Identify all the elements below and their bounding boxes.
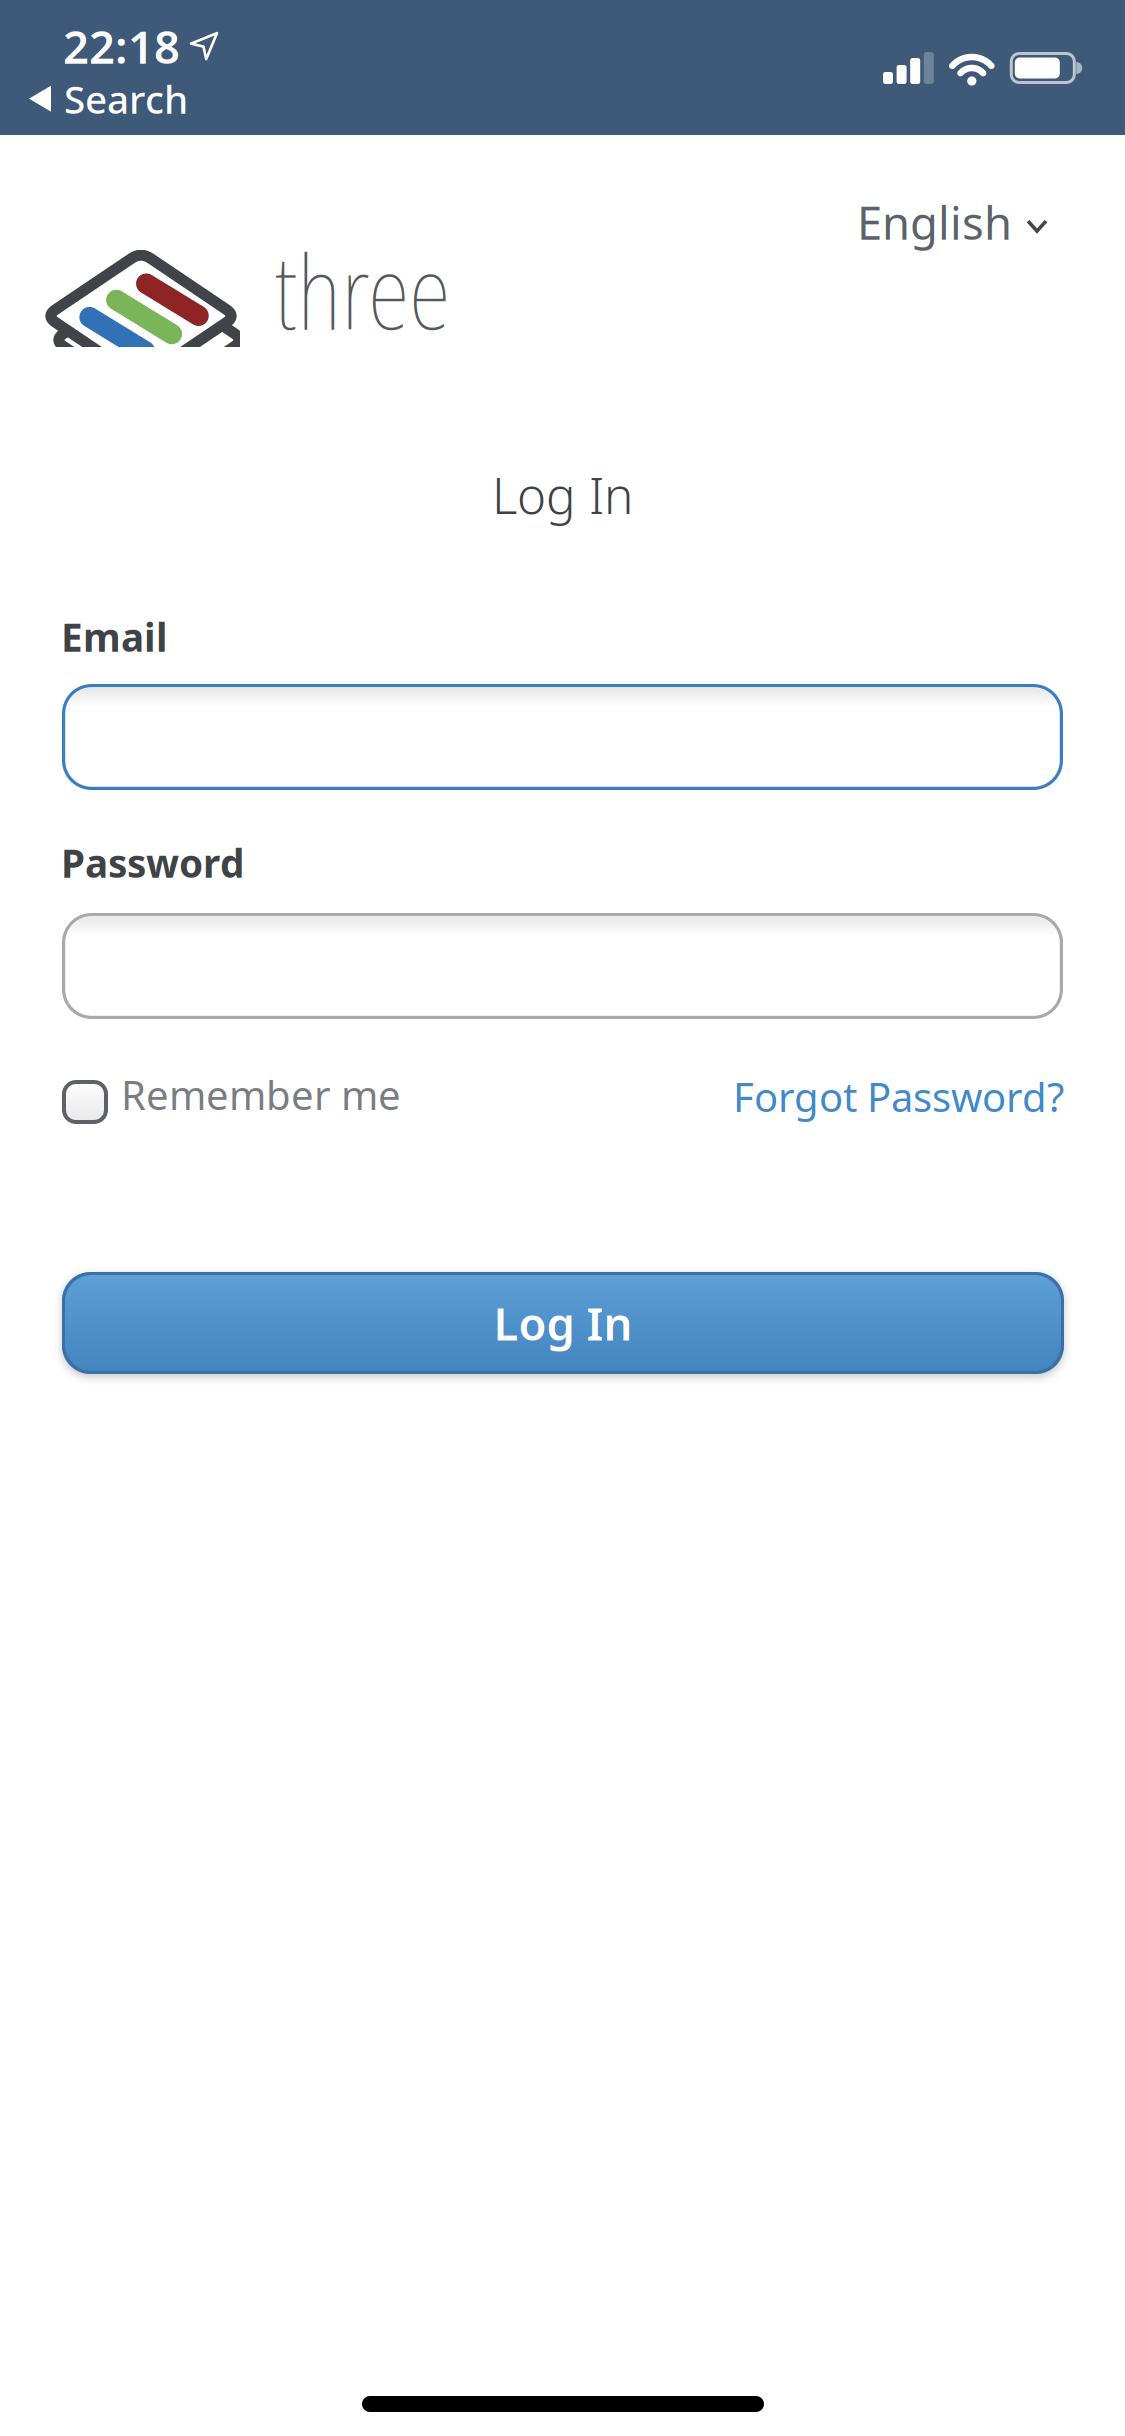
staticText: Remember me [121, 1068, 401, 1121]
staticText: Log In [493, 1293, 632, 1353]
staticText: English [857, 192, 1012, 252]
staticText: three [274, 221, 450, 359]
button[interactable]: Remember me [62, 1066, 422, 1128]
button[interactable]: English [857, 192, 1048, 252]
staticText: Forgot Password? [733, 1070, 1064, 1123]
button[interactable] [62, 684, 1063, 790]
staticText: Log In [492, 462, 633, 527]
staticText: Search [64, 73, 188, 124]
button[interactable]: Log In [62, 1272, 1064, 1374]
button[interactable] [62, 913, 1063, 1019]
staticText: 22:18 [63, 16, 180, 76]
staticText: Password [61, 837, 244, 888]
button[interactable]: Forgot Password? [733, 1070, 1064, 1123]
button[interactable]: Search [29, 73, 188, 124]
staticText: Email [61, 611, 168, 662]
